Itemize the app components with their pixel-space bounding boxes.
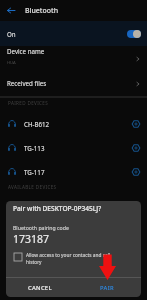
staticText: On [7,30,16,38]
button[interactable]: PAIR [73,278,141,297]
staticText: Bluetooth [25,6,59,16]
staticText: CANCEL [28,284,52,292]
button[interactable]: CANCEL [6,278,73,297]
button[interactable]: Device settings [129,141,143,155]
button[interactable]: Device settings [129,165,143,179]
staticText: Allow access to your contacts and call h… [26,252,117,266]
button[interactable]: TG-117 [0,160,147,184]
staticText: PAIR [100,284,114,292]
staticText: Received files [7,79,135,87]
staticText: TG-113 [24,144,128,152]
staticText: Bluetooth pairing code [13,224,69,231]
staticText: AVAILABLE DEVICES [8,184,57,190]
button[interactable]: Device settings [129,117,143,131]
staticText: 173187 [13,232,50,246]
button[interactable]: CH-B612 [0,112,147,136]
button[interactable]: Allow access to your contacts and call h… [6,252,141,266]
staticText: PAIRED DEVICES [8,100,49,106]
staticText: Device name [7,47,45,55]
staticText: CH-B612 [24,120,128,128]
button[interactable]: Back [0,0,22,21]
button[interactable]: Device name [0,46,147,71]
staticText: Pair with DESKTOP-0P345LJ? [13,204,102,213]
button[interactable]: On [0,21,147,46]
button[interactable]: Received files [0,71,147,96]
button[interactable]: TG-113 [0,136,147,160]
staticText: HUA [7,60,16,66]
staticText: TG-117 [24,168,128,176]
